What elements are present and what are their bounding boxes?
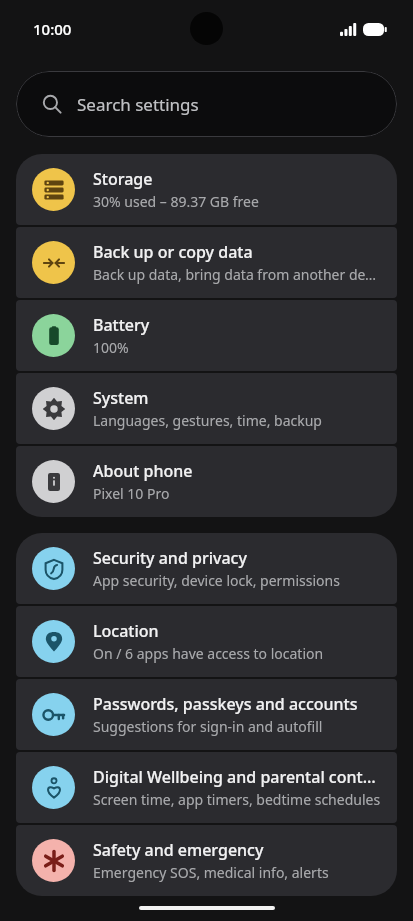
staticText: Search settings [77, 93, 199, 116]
staticText: Back up data, bring data from another de… [93, 265, 381, 284]
staticText: 100% [93, 338, 129, 357]
staticText: Security and privacy [93, 547, 247, 569]
staticText: System [93, 387, 149, 409]
button[interactable]: Battery [16, 300, 397, 371]
button[interactable]: Safety and emergency [16, 825, 397, 896]
button[interactable]: Location [16, 606, 397, 677]
staticText: Screen time, app timers, bedtime schedul… [93, 790, 381, 809]
staticText: Location [93, 620, 159, 642]
staticText: On / 6 apps have access to location [93, 644, 324, 663]
staticText: Emergency SOS, medical info, alerts [93, 863, 329, 882]
button[interactable]: Security and privacy [16, 533, 397, 604]
staticText: 30% used – 89.37 GB free [93, 192, 259, 211]
button[interactable]: Storage [16, 154, 397, 225]
staticText: Suggestions for sign-in and autofill [93, 717, 323, 736]
staticText: Safety and emergency [93, 839, 264, 861]
button[interactable]: Digital Wellbeing and parental controls [16, 752, 397, 823]
staticText: Back up or copy data [93, 241, 253, 263]
staticText: App security, device lock, permissions [93, 571, 340, 590]
button[interactable]: Back up or copy data [16, 227, 397, 298]
staticText: Storage [93, 168, 153, 190]
button[interactable]: Search settings [16, 71, 397, 137]
button[interactable]: About phone [16, 446, 397, 517]
button[interactable]: Passwords, passkeys and accounts [16, 679, 397, 750]
staticText: Digital Wellbeing and parental controls [93, 766, 381, 788]
staticText: Passwords, passkeys and accounts [93, 693, 358, 715]
staticText: About phone [93, 460, 193, 482]
staticText: Languages, gestures, time, backup [93, 411, 322, 430]
button[interactable]: System [16, 373, 397, 444]
staticText: 10:00 [33, 19, 72, 39]
staticText: Battery [93, 314, 150, 336]
staticText: Pixel 10 Pro [93, 484, 170, 503]
